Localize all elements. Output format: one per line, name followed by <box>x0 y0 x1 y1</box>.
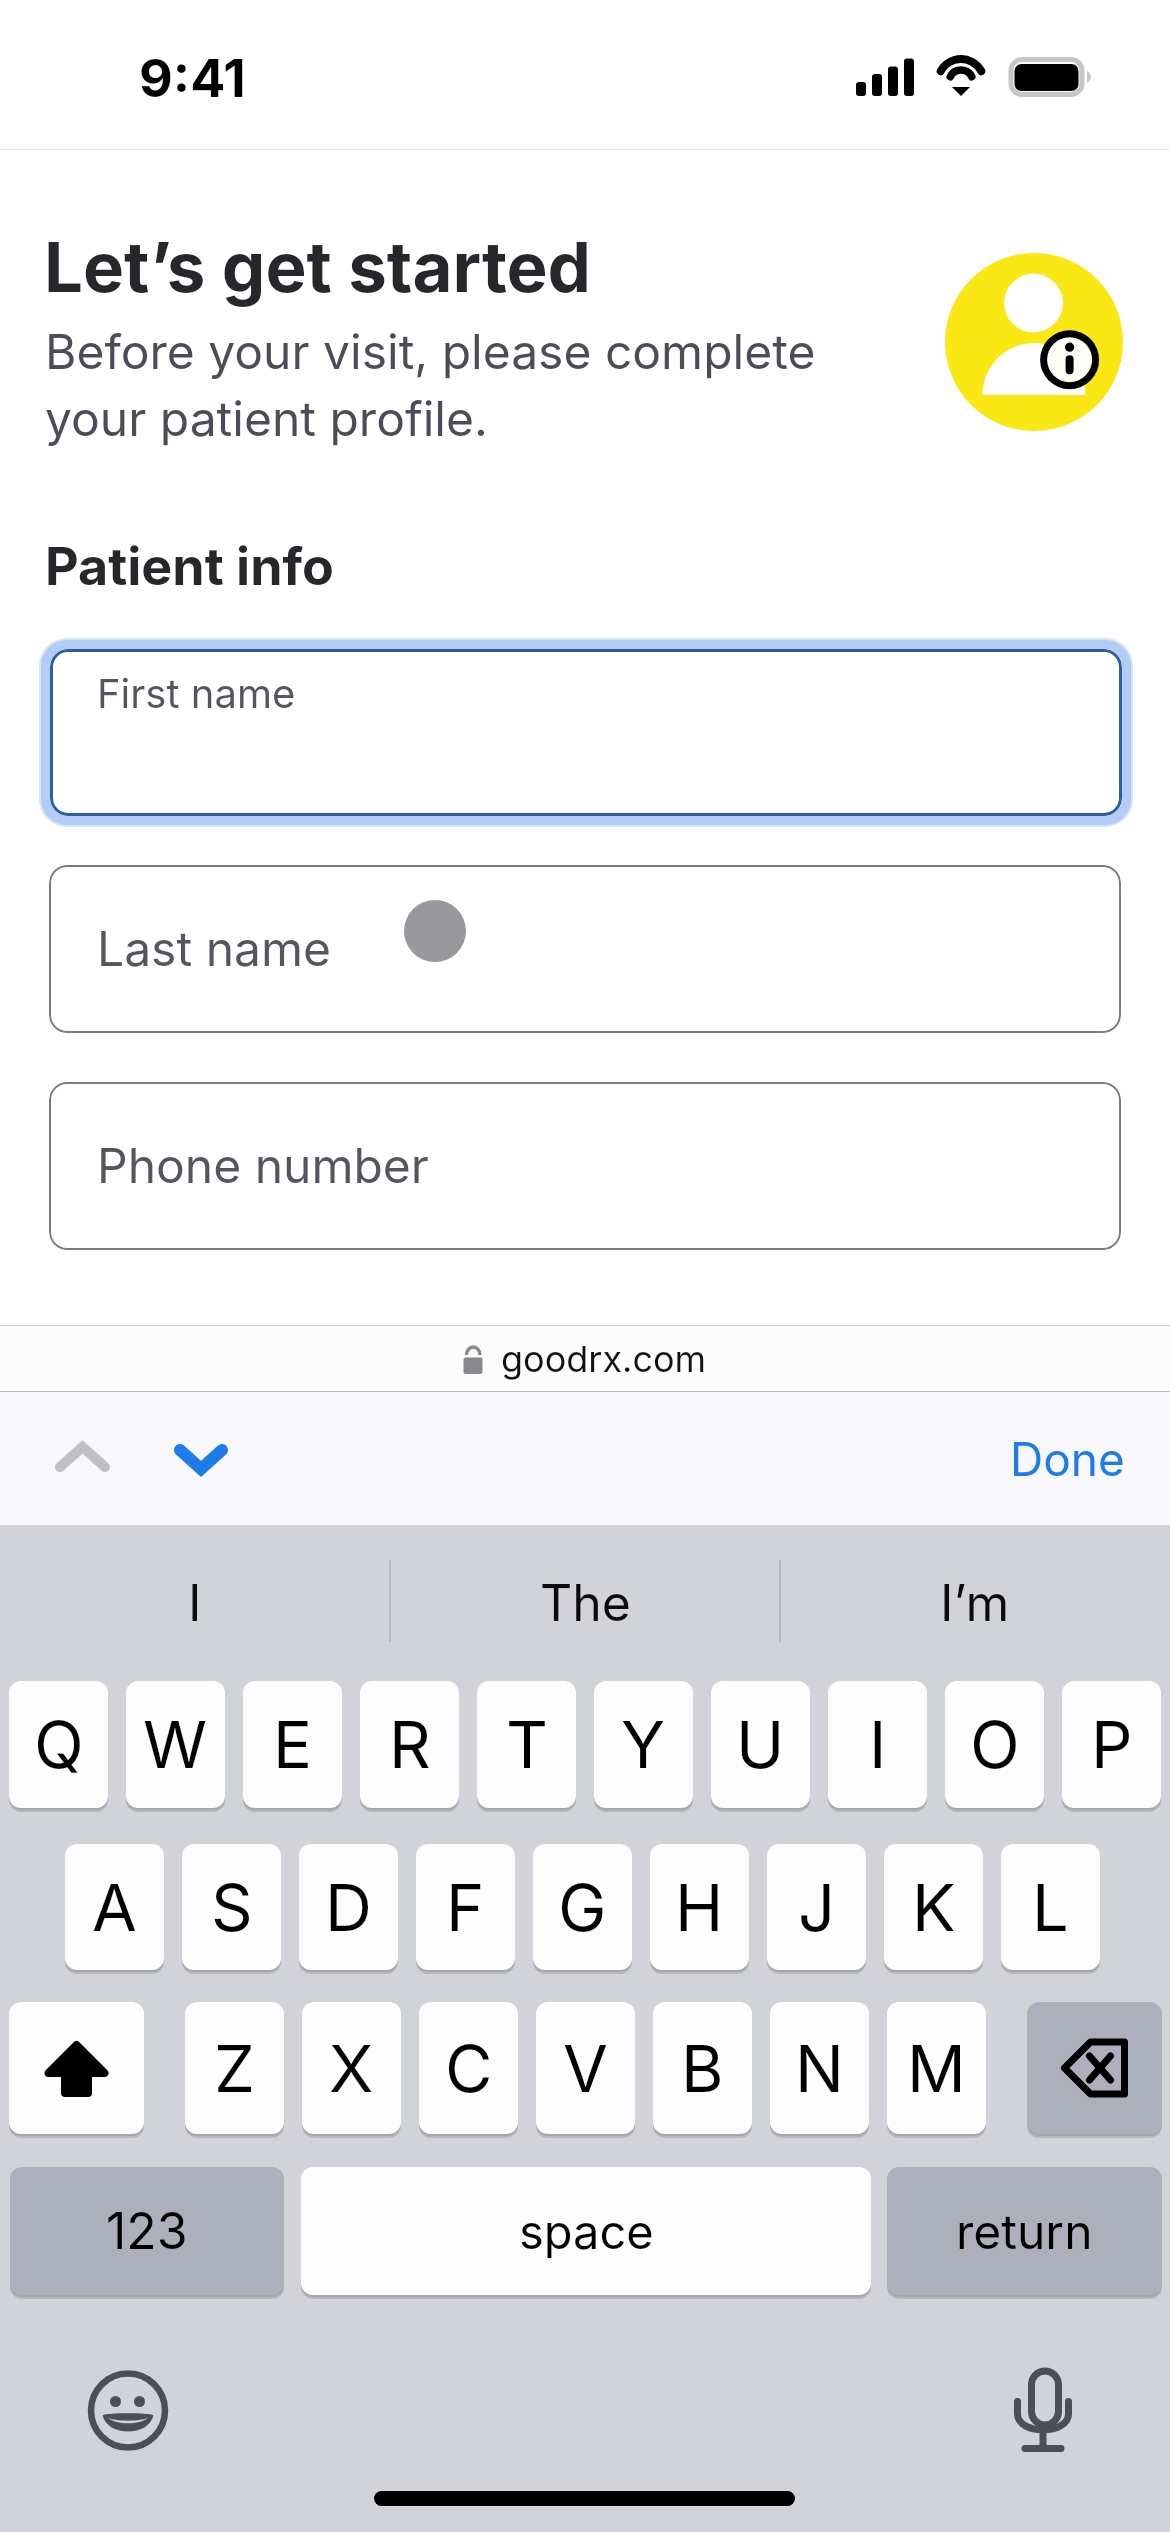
staticText: R <box>389 1705 431 1784</box>
button[interactable]: Y <box>594 1681 693 1808</box>
staticText: Last name <box>97 919 331 977</box>
button[interactable]: First name <box>50 649 1122 816</box>
staticText: Phone number <box>97 1136 429 1194</box>
button[interactable]: I <box>0 1525 390 1681</box>
button[interactable]: Emoji <box>88 2370 168 2450</box>
button[interactable]: Backspace <box>1027 2002 1162 2134</box>
button[interactable]: Z <box>185 2002 284 2134</box>
button[interactable]: The <box>390 1525 780 1681</box>
staticText: U <box>736 1705 785 1784</box>
button[interactable]: D <box>299 1844 398 1970</box>
staticText: I’m <box>940 1573 1010 1633</box>
button[interactable]: L <box>1001 1844 1100 1970</box>
button[interactable]: N <box>770 2002 869 2134</box>
button[interactable]: Last name <box>49 865 1121 1033</box>
button[interactable]: return <box>887 2167 1162 2295</box>
button[interactable]: U <box>711 1681 810 1808</box>
button[interactable]: 123 <box>10 2167 284 2295</box>
staticText: H <box>675 1868 724 1947</box>
staticText: Z <box>214 2029 255 2108</box>
staticText: O <box>970 1705 1020 1784</box>
button[interactable]: Dictation <box>1008 2363 1078 2455</box>
button[interactable]: H <box>650 1844 749 1970</box>
button[interactable]: V <box>536 2002 635 2134</box>
staticText: V <box>563 2029 608 2108</box>
button[interactable]: W <box>126 1681 225 1808</box>
staticText: X <box>329 2029 374 2108</box>
button[interactable]: C <box>419 2002 518 2134</box>
button[interactable]: E <box>243 1681 342 1808</box>
staticText: L <box>1032 1868 1069 1947</box>
staticText: F <box>446 1868 485 1947</box>
staticText: K <box>912 1868 956 1947</box>
button[interactable]: T <box>477 1681 576 1808</box>
staticText: space <box>519 2203 654 2260</box>
staticText: The <box>540 1573 631 1633</box>
button[interactable]: Next field <box>140 1402 265 1515</box>
button[interactable]: S <box>182 1844 281 1970</box>
staticText: G <box>558 1868 607 1947</box>
button[interactable]: space <box>301 2167 871 2295</box>
button[interactable]: Q <box>9 1681 108 1808</box>
button[interactable]: A <box>65 1844 164 1970</box>
button[interactable]: F <box>416 1844 515 1970</box>
staticText: Y <box>621 1705 666 1784</box>
staticText: 123 <box>106 2201 188 2261</box>
staticText: E <box>273 1705 313 1784</box>
staticText: B <box>681 2029 724 2108</box>
staticText: I <box>869 1705 887 1784</box>
staticText: Patient info <box>45 535 334 598</box>
staticText: Q <box>34 1705 84 1784</box>
staticText: C <box>445 2029 493 2108</box>
staticText: goodrx.com <box>501 1337 707 1381</box>
staticText: return <box>956 2202 1093 2260</box>
button[interactable]: J <box>767 1844 866 1970</box>
button[interactable]: I <box>828 1681 927 1808</box>
staticText: Done <box>1010 1431 1125 1487</box>
staticText: W <box>143 1705 208 1784</box>
staticText: J <box>798 1868 836 1947</box>
staticText: D <box>325 1868 372 1947</box>
staticText: Let’s get started <box>44 225 592 308</box>
staticText: S <box>211 1868 253 1947</box>
staticText: P <box>1091 1705 1133 1784</box>
button[interactable]: K <box>884 1844 983 1970</box>
button[interactable]: Phone number <box>49 1082 1121 1250</box>
staticText: A <box>92 1868 137 1947</box>
staticText: First name <box>97 669 296 717</box>
staticText: T <box>506 1705 548 1784</box>
button[interactable]: Previous field <box>20 1402 145 1515</box>
staticText: M <box>907 2029 966 2108</box>
staticText: I <box>188 1573 202 1633</box>
button[interactable]: P <box>1062 1681 1161 1808</box>
button[interactable]: X <box>302 2002 401 2134</box>
button[interactable]: G <box>533 1844 632 1970</box>
button[interactable]: B <box>653 2002 752 2134</box>
button[interactable]: O <box>945 1681 1044 1808</box>
button[interactable]: Patient profile info <box>945 253 1123 431</box>
staticText: N <box>795 2029 844 2108</box>
button[interactable]: R <box>360 1681 459 1808</box>
button[interactable]: Shift <box>9 2002 144 2134</box>
button[interactable]: M <box>887 2002 986 2134</box>
button[interactable]: Done <box>1010 1431 1125 1487</box>
button[interactable]: I’m <box>780 1525 1170 1681</box>
staticText: Before your visit, please complete your … <box>45 322 816 448</box>
staticText: 9:41 <box>139 47 246 110</box>
